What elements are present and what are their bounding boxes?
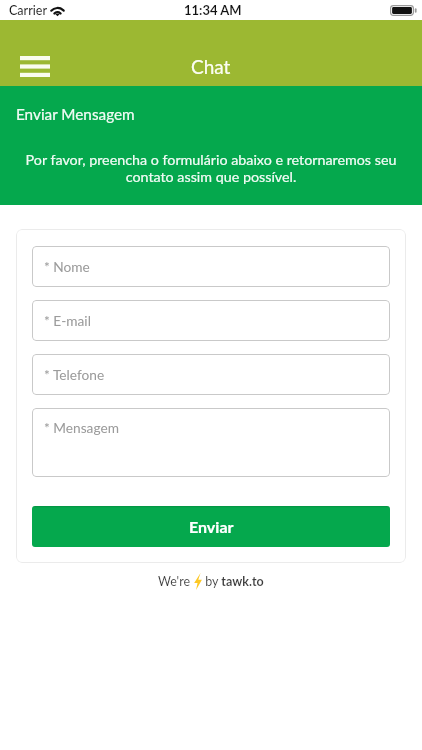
- staticText: * Nome: [44, 258, 90, 274]
- staticText: by tawk.to: [202, 574, 264, 589]
- staticText: Carrier: [9, 3, 47, 18]
- button[interactable]: * Nome: [32, 246, 390, 287]
- button[interactable]: Enviar: [32, 506, 390, 547]
- staticText: Chat: [191, 55, 231, 78]
- staticText: Por favor, preencha o formulário abaixo …: [16, 151, 406, 185]
- staticText: Enviar: [189, 517, 234, 536]
- staticText: * Mensagem: [44, 419, 119, 435]
- button[interactable]: * Telefone: [32, 354, 390, 395]
- button[interactable]: * E-mail: [32, 300, 390, 341]
- staticText: 11:34 AM: [184, 2, 242, 18]
- staticText: Enviar Mensagem: [16, 105, 135, 123]
- staticText: * Telefone: [44, 366, 105, 382]
- staticText: We're: [158, 574, 194, 589]
- button[interactable]: * Mensagem: [32, 408, 390, 477]
- staticText: * E-mail: [44, 312, 91, 328]
- button[interactable]: Open navigation menu: [10, 41, 60, 91]
